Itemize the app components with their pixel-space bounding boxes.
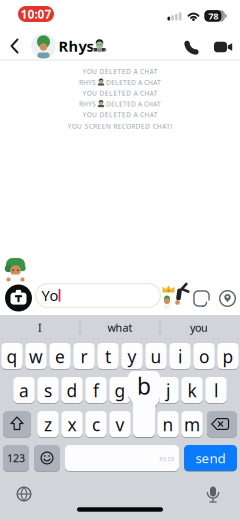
staticText: I xyxy=(38,320,42,335)
staticText: q xyxy=(6,345,17,368)
staticText: h xyxy=(138,379,149,402)
staticText: j xyxy=(166,379,170,402)
staticText: 78 xyxy=(208,10,218,22)
staticText: g xyxy=(114,379,125,402)
staticText: o xyxy=(199,345,209,368)
staticText: r xyxy=(80,345,87,368)
staticText: DELETED A CHAT xyxy=(106,78,161,87)
staticText: e xyxy=(55,345,65,368)
staticText: DELETED A CHAT xyxy=(106,99,161,108)
staticText: what xyxy=(107,320,132,335)
staticText: s xyxy=(44,379,52,402)
staticText: v xyxy=(115,413,124,436)
staticText: YOU DELETED A CHAT xyxy=(82,110,158,119)
staticText: c xyxy=(92,413,100,436)
staticText: t xyxy=(105,345,111,368)
staticText: Rhys xyxy=(58,36,93,56)
staticText: you xyxy=(190,320,208,335)
staticText: b xyxy=(137,371,151,401)
staticText: z xyxy=(44,413,52,436)
staticText: f xyxy=(93,379,99,402)
staticText: x xyxy=(67,413,76,436)
staticText: n xyxy=(162,413,173,436)
staticText: RHYS xyxy=(79,78,96,87)
staticText: YOU SCREEN RECORDED CHAT! xyxy=(67,122,172,131)
staticText: Yo xyxy=(41,286,58,305)
staticText: 123 xyxy=(7,451,25,465)
staticText: 10:07 xyxy=(20,6,51,22)
staticText: m xyxy=(184,413,200,436)
staticText: RHYS xyxy=(79,99,96,108)
staticText: i xyxy=(178,345,182,368)
staticText: YOU DELETED A CHAT xyxy=(82,67,158,76)
staticText: a xyxy=(19,379,29,402)
staticText: p xyxy=(222,345,233,368)
staticText: k xyxy=(187,379,196,402)
staticText: YOU DELETED A CHAT xyxy=(82,89,158,98)
staticText: y xyxy=(127,345,136,368)
staticText: u xyxy=(150,345,161,368)
staticText: send xyxy=(195,449,225,467)
staticText: l xyxy=(214,379,218,402)
staticText: w xyxy=(29,345,43,368)
staticText: EN DE xyxy=(159,455,174,463)
staticText: d xyxy=(66,379,77,402)
